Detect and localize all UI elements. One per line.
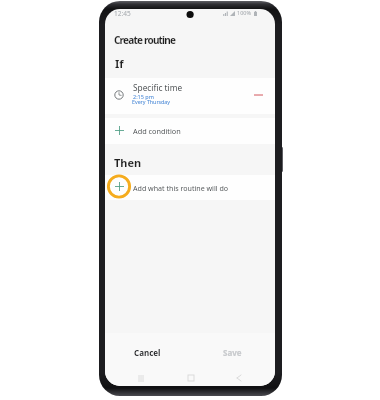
button[interactable]: Back <box>225 369 253 386</box>
staticText: 2:15 pm <box>133 93 154 100</box>
staticText: 12:45 <box>114 9 131 18</box>
staticText: If <box>115 56 124 71</box>
staticText: Add condition <box>133 126 181 136</box>
staticText: Add what this routine will do <box>133 183 229 193</box>
staticText: Every Thursday <box>132 98 171 105</box>
staticText: Specific time <box>133 82 183 93</box>
button[interactable]: Home <box>177 369 205 386</box>
button[interactable]: Recents <box>127 369 155 386</box>
staticText: Cancel <box>134 347 161 358</box>
button[interactable]: Save <box>190 343 275 362</box>
button[interactable]: Add condition <box>105 118 275 144</box>
staticText: Create routine <box>114 33 176 47</box>
staticText: Then <box>114 155 142 170</box>
staticText: 100% <box>237 9 252 16</box>
button[interactable]: Cancel <box>105 343 190 362</box>
staticText: Save <box>223 347 242 358</box>
button[interactable]: Add what this routine will do <box>105 175 275 201</box>
button[interactable]: Remove condition <box>247 84 269 106</box>
button[interactable]: Specific time <box>105 78 275 114</box>
